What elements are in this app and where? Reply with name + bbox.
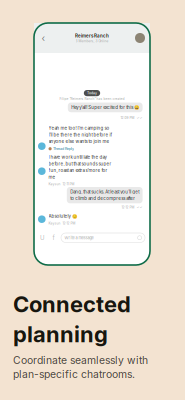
staticText: Absolutely 😊 (48, 213, 76, 219)
button[interactable]: Attach file (39, 234, 46, 242)
staticText: ‹ (41, 32, 45, 44)
staticText: me (48, 174, 55, 180)
staticText: anyone else wants to join me (48, 139, 109, 144)
staticText: Dang, that sucks. At least you'll get (70, 189, 139, 194)
staticText: Kaysun 12:11 PM (48, 182, 74, 186)
staticText: planning (13, 321, 108, 348)
staticText: 3 Members, 3 Online (75, 39, 108, 43)
button[interactable]: Chat details (135, 33, 145, 43)
staticText: U (40, 234, 45, 241)
staticText: Today (87, 91, 97, 95)
staticText: Reimers Ranch (75, 33, 109, 39)
staticText: before, but that sounds super (48, 161, 111, 166)
staticText: Hey y'all! Super excited for this 😄 (71, 105, 139, 110)
staticText: 12:09 PM ✓✓ (121, 116, 143, 120)
button[interactable]: Add emoji (51, 234, 56, 242)
button[interactable]: Back (39, 32, 48, 44)
staticText: Yeah me too! I'm camping so (48, 125, 109, 131)
staticText: I'll be there the night before if (48, 132, 112, 137)
button[interactable]: Write a message (61, 233, 145, 242)
staticText: to climb and decompress after (70, 196, 135, 201)
staticText: Kaysun 12:12 PM (48, 221, 75, 225)
staticText: Thread Reply (53, 147, 74, 151)
staticText: Filipe "Reimers Ranch" has been created (59, 97, 124, 101)
staticText: Connected (13, 291, 131, 318)
staticText: plan-specific chatrooms. (13, 368, 135, 381)
staticText: 12:12 PM ✓✓ (122, 205, 143, 209)
staticText: Coordinate seamlessly with (13, 354, 148, 367)
staticText: f (52, 234, 54, 241)
staticText: I have work until late the day (48, 154, 106, 160)
staticText: fun, roast an extra s'more for (48, 168, 107, 173)
staticText: Write a message (64, 235, 93, 240)
